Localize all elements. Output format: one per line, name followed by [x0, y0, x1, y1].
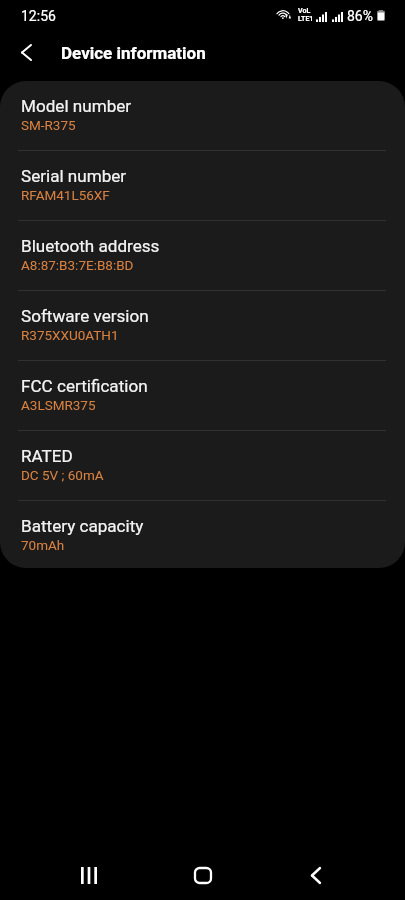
staticText: R375XXU0ATH1	[21, 327, 119, 343]
staticText: A8:87:B3:7E:B8:BD	[21, 257, 134, 273]
staticText: VoL	[298, 7, 311, 15]
button[interactable]: Model number	[0, 81, 405, 151]
staticText: FCC certification	[21, 376, 148, 396]
staticText: 70mAh	[21, 537, 65, 553]
staticText: Battery capacity	[21, 516, 144, 536]
staticText: 86%	[347, 8, 373, 24]
button[interactable]: Serial number	[0, 151, 405, 221]
staticText: DC 5V ; 60mA	[21, 467, 104, 483]
button[interactable]: Bluetooth address	[0, 221, 405, 291]
button[interactable]: Home	[170, 848, 236, 900]
staticText: Device information	[61, 43, 206, 63]
staticText: Serial number	[21, 166, 127, 186]
staticText: 12:56	[21, 8, 56, 24]
staticText: Software version	[21, 306, 149, 326]
staticText: Bluetooth address	[21, 236, 160, 256]
staticText: A3LSMR375	[21, 397, 96, 413]
staticText: SM-R375	[21, 117, 76, 133]
button[interactable]: FCC certification	[0, 361, 405, 431]
staticText: RFAM41L56XF	[21, 187, 110, 203]
staticText: LTE1	[298, 15, 314, 23]
button[interactable]: Recent apps	[56, 848, 122, 900]
button[interactable]: Battery capacity	[0, 501, 405, 568]
staticText: Model number	[21, 96, 132, 116]
button[interactable]: Navigate up	[4, 30, 48, 74]
staticText: RATED	[21, 446, 73, 466]
button[interactable]: Software version	[0, 291, 405, 361]
button[interactable]: RATED	[0, 431, 405, 501]
button[interactable]: Back	[283, 848, 349, 900]
